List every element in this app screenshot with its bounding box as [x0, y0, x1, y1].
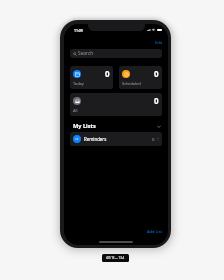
staticText: 0: [154, 95, 159, 106]
button[interactable]: Search: [70, 49, 162, 58]
button[interactable]: Reminders: [70, 132, 162, 146]
staticText: Scheduled: [122, 81, 141, 86]
staticText: All: [73, 108, 78, 113]
staticText: Search: [78, 50, 94, 57]
button[interactable]: 0: [70, 93, 162, 116]
staticText: 0: [105, 68, 110, 79]
staticText: 0: [154, 68, 159, 79]
staticText: 0: [152, 136, 155, 142]
button[interactable]: Edit: [154, 39, 164, 46]
other: Collapse My Lists: [157, 125, 161, 128]
staticText: My Lists: [73, 122, 96, 130]
staticText: 11:09: [74, 28, 83, 33]
staticText: Edit: [155, 40, 163, 45]
button[interactable]: 0: [70, 66, 113, 89]
staticText: Add List: [147, 229, 163, 234]
staticText: Reminders: [84, 136, 107, 142]
button[interactable]: Add List: [146, 228, 164, 235]
button[interactable]: 0: [119, 66, 162, 89]
staticText: Today: [73, 81, 84, 86]
staticText: iOS 13 — 13.4: [106, 256, 125, 260]
